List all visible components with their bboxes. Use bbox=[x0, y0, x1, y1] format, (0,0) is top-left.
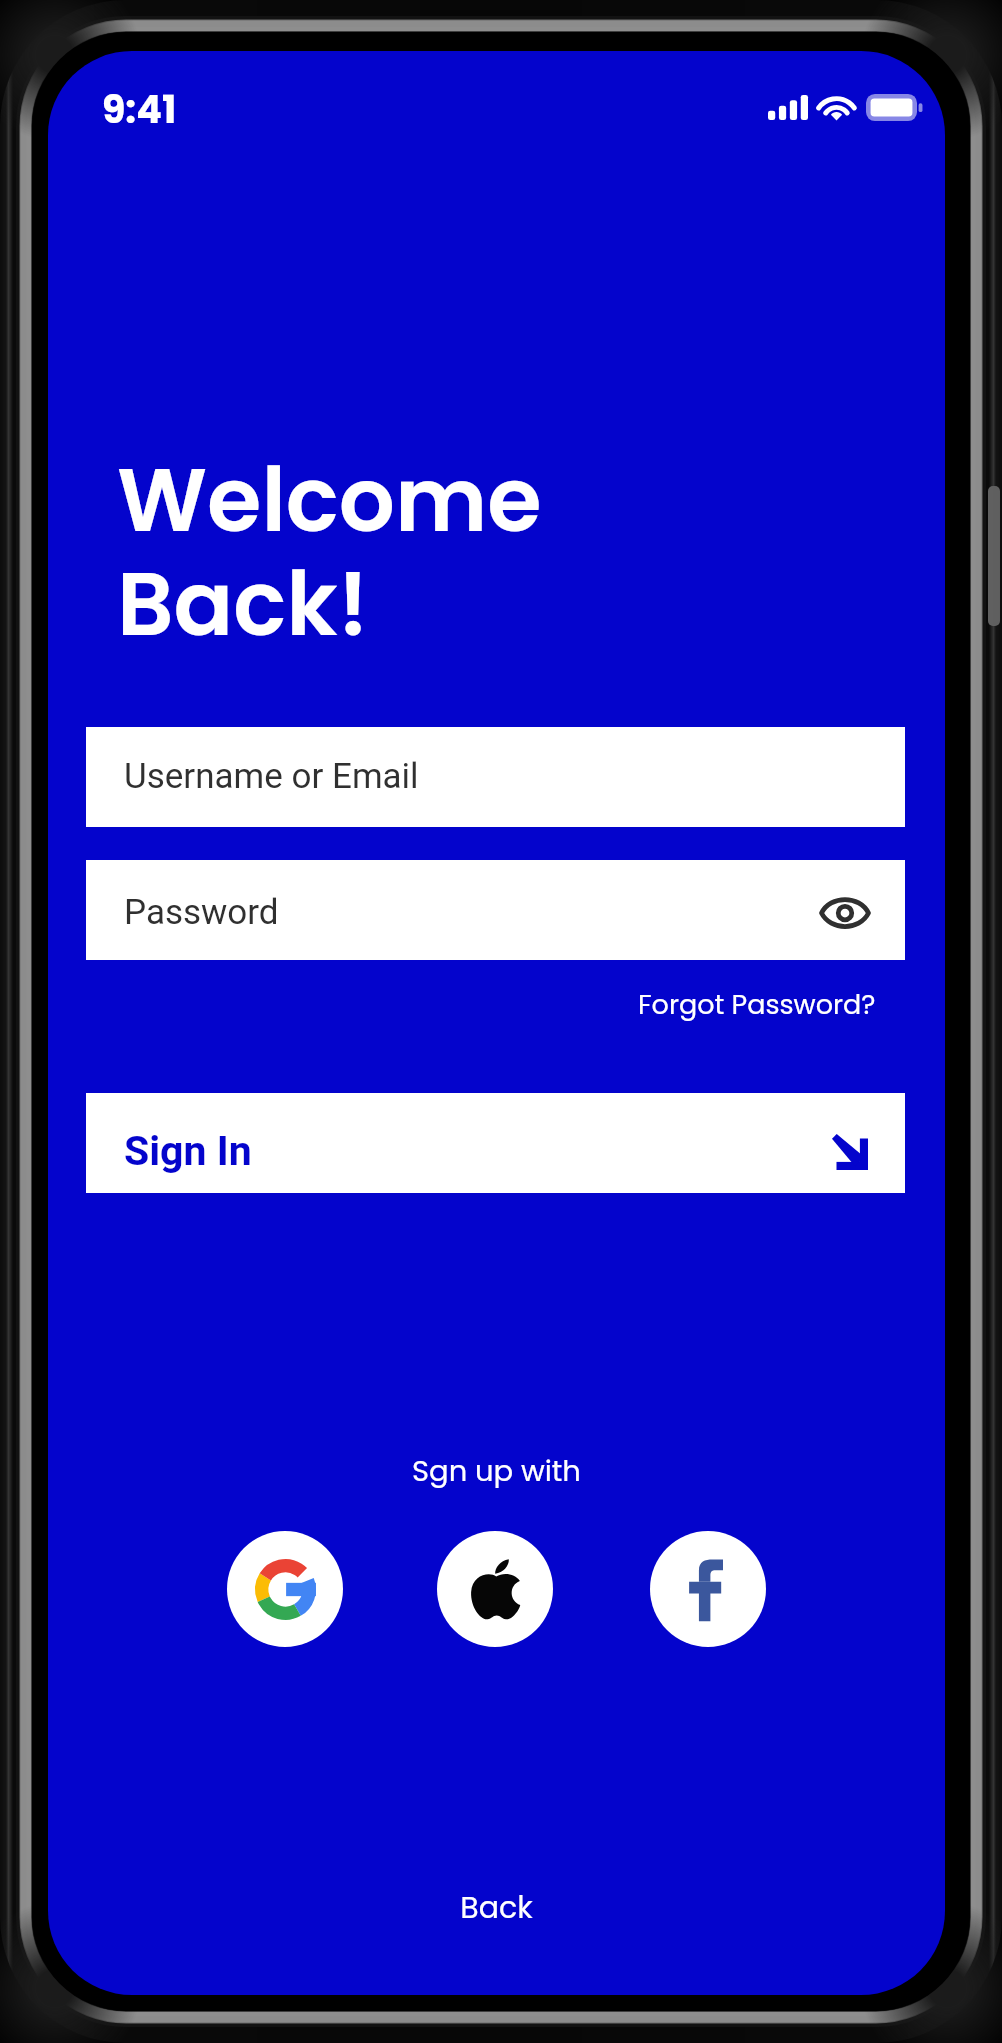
button[interactable]: Password bbox=[86, 860, 905, 960]
button[interactable]: Sign up with Google bbox=[227, 1531, 343, 1647]
staticText: Sgn up with bbox=[412, 1451, 581, 1492]
staticText: 9:41 bbox=[102, 83, 177, 136]
staticText: Sign In bbox=[124, 1127, 252, 1175]
button[interactable]: Show password bbox=[814, 882, 875, 943]
staticText: Username or Email bbox=[124, 756, 419, 797]
button[interactable]: Back bbox=[420, 1877, 573, 1939]
staticText: Welcome Back! bbox=[117, 439, 542, 666]
button[interactable]: Sign up with Facebook bbox=[650, 1531, 766, 1647]
button[interactable]: Sign In bbox=[832, 1134, 868, 1170]
staticText: Password bbox=[124, 892, 279, 933]
button[interactable]: Forgot Password? bbox=[638, 986, 876, 1024]
button[interactable]: Sign up with Apple bbox=[437, 1531, 553, 1647]
button[interactable]: Sign In bbox=[86, 1093, 905, 1193]
button[interactable]: Username or Email bbox=[86, 727, 905, 827]
